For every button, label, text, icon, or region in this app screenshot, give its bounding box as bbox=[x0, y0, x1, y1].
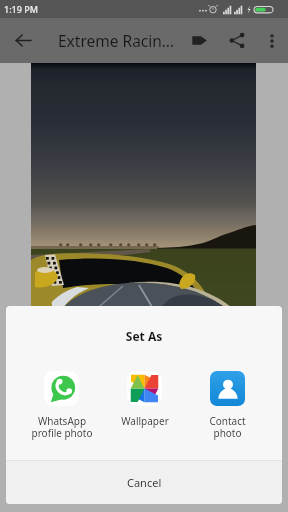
staticText: Cancel bbox=[127, 475, 162, 490]
button[interactable]: WhatsApp profile photo bbox=[20, 371, 103, 440]
button[interactable]: More options bbox=[255, 18, 288, 63]
staticText: Contact photo bbox=[209, 414, 246, 440]
staticText: Wallpaper bbox=[121, 414, 169, 428]
staticText: Extreme Racin… bbox=[58, 30, 181, 51]
staticText: Set As bbox=[6, 328, 282, 344]
staticText: WhatsApp profile photo bbox=[31, 414, 93, 440]
button[interactable]: Share bbox=[218, 18, 255, 63]
button[interactable]: Cancel bbox=[6, 461, 282, 504]
staticText: 1:19 PM bbox=[4, 3, 38, 15]
button[interactable]: Tag bbox=[181, 18, 218, 63]
button[interactable]: Navigate up bbox=[0, 18, 46, 63]
button[interactable]: Contact photo bbox=[186, 371, 269, 440]
button[interactable]: Wallpaper bbox=[103, 371, 186, 428]
